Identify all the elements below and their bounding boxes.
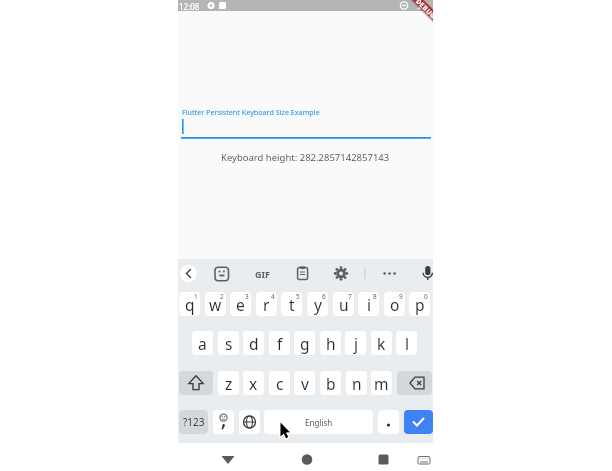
button[interactable]: n bbox=[346, 371, 367, 395]
staticText: ?123 bbox=[183, 415, 205, 429]
button[interactable]: c bbox=[269, 371, 290, 395]
button[interactable] bbox=[214, 446, 242, 470]
button[interactable] bbox=[330, 263, 351, 284]
staticText: i bbox=[367, 294, 371, 315]
button[interactable]: o bbox=[384, 292, 405, 316]
button[interactable]: q bbox=[179, 292, 200, 316]
staticText: v bbox=[301, 373, 309, 394]
button[interactable] bbox=[293, 446, 321, 470]
staticText: y bbox=[314, 294, 322, 315]
button[interactable] bbox=[178, 103, 433, 140]
staticText: e bbox=[236, 294, 245, 315]
button[interactable]: e bbox=[230, 292, 251, 316]
button[interactable]: a bbox=[192, 331, 213, 355]
staticText: 5 bbox=[296, 292, 300, 301]
button[interactable] bbox=[180, 265, 197, 282]
staticText: Flutter Persistent Keyboard Size Example bbox=[182, 107, 320, 117]
staticText: 3 bbox=[245, 292, 249, 301]
staticText: q bbox=[185, 294, 195, 315]
button[interactable]: i bbox=[358, 292, 379, 316]
button[interactable]: z bbox=[218, 371, 239, 395]
button[interactable] bbox=[404, 410, 433, 434]
staticText: r bbox=[263, 294, 270, 315]
button[interactable]: ?123 bbox=[179, 410, 208, 434]
button[interactable] bbox=[252, 263, 273, 284]
staticText: 1 bbox=[194, 292, 198, 301]
staticText: 4 bbox=[271, 292, 275, 301]
staticText: g bbox=[300, 333, 310, 354]
button[interactable] bbox=[292, 263, 313, 284]
button[interactable]: x bbox=[243, 371, 264, 395]
staticText: p bbox=[415, 294, 425, 315]
staticText: English bbox=[305, 417, 333, 428]
staticText: n bbox=[352, 373, 362, 394]
staticText: l bbox=[405, 333, 409, 354]
staticText: s bbox=[225, 333, 233, 354]
staticText: DEBUG bbox=[415, 0, 433, 20]
staticText: o bbox=[390, 294, 400, 315]
button[interactable] bbox=[212, 263, 232, 284]
staticText: 6 bbox=[322, 292, 326, 301]
button[interactable]: j bbox=[345, 331, 366, 355]
button[interactable] bbox=[239, 410, 260, 434]
button[interactable] bbox=[417, 263, 433, 284]
staticText: d bbox=[249, 333, 259, 354]
staticText: 8 bbox=[373, 292, 377, 301]
staticText: z bbox=[225, 373, 233, 394]
staticText: w bbox=[209, 294, 222, 315]
staticText: a bbox=[198, 333, 207, 354]
staticText: 12:08 bbox=[179, 1, 200, 12]
button[interactable] bbox=[213, 410, 234, 434]
button[interactable]: t bbox=[281, 292, 302, 316]
staticText: b bbox=[326, 373, 336, 394]
button[interactable] bbox=[397, 371, 432, 395]
staticText: k bbox=[377, 333, 386, 354]
staticText: c bbox=[276, 373, 284, 394]
staticText: j bbox=[354, 333, 358, 354]
staticText: 7 bbox=[348, 292, 352, 301]
button[interactable]: English bbox=[264, 410, 373, 434]
button[interactable]: y bbox=[307, 292, 328, 316]
button[interactable]: v bbox=[294, 371, 315, 395]
button[interactable]: k bbox=[371, 331, 392, 355]
button[interactable]: p bbox=[409, 292, 430, 316]
button[interactable]: d bbox=[243, 331, 264, 355]
staticText: t bbox=[289, 294, 295, 315]
button[interactable]: f bbox=[269, 331, 290, 355]
button[interactable]: s bbox=[218, 331, 239, 355]
staticText: GIF bbox=[255, 268, 270, 280]
button[interactable]: l bbox=[396, 331, 417, 355]
staticText: 9 bbox=[399, 292, 403, 301]
staticText: h bbox=[326, 333, 336, 354]
button[interactable] bbox=[179, 371, 213, 395]
staticText: 2 bbox=[220, 292, 224, 301]
staticText: u bbox=[339, 294, 349, 315]
button[interactable]: u bbox=[333, 292, 354, 316]
button[interactable]: w bbox=[205, 292, 226, 316]
button[interactable] bbox=[378, 410, 399, 434]
staticText: 0 bbox=[424, 292, 428, 301]
staticText: m bbox=[374, 373, 389, 394]
button[interactable]: m bbox=[371, 371, 392, 395]
button[interactable]: g bbox=[294, 331, 315, 355]
staticText: f bbox=[277, 333, 283, 354]
button[interactable] bbox=[369, 446, 397, 470]
staticText: Keyboard height: 282.2857142857143 bbox=[221, 151, 390, 164]
button[interactable] bbox=[414, 446, 433, 470]
button[interactable]: r bbox=[256, 292, 277, 316]
button[interactable] bbox=[379, 263, 400, 284]
button[interactable]: h bbox=[320, 331, 341, 355]
button[interactable]: b bbox=[320, 371, 341, 395]
staticText: x bbox=[249, 373, 258, 394]
